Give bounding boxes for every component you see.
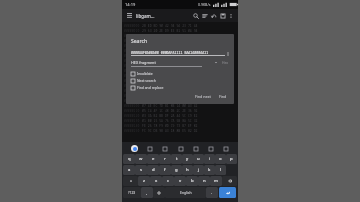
button[interactable]: Shift <box>123 176 138 186</box>
staticText: a <box>128 167 131 173</box>
staticText: 17 14 37 25 90 5F 6F C0 9D 13 <box>142 69 200 73</box>
staticText: m <box>214 178 218 184</box>
staticText: 0E EC C3 A1 EC 9D CD 77 E9 53 <box>142 89 200 93</box>
button[interactable]: j <box>193 165 204 175</box>
button[interactable]: a <box>123 165 135 175</box>
button[interactable]: e <box>147 154 159 164</box>
staticText: 1E B1 0E 49 CB 70 28 36 E3 23 <box>142 54 200 58</box>
staticText: FE 26 78 F9 0D C9 73 B7 EF 82 <box>142 124 200 128</box>
button[interactable]: z <box>138 176 150 186</box>
staticText: English <box>180 190 192 195</box>
staticText: 00000040 <box>124 44 140 48</box>
button[interactable]: v <box>174 176 186 186</box>
staticText: Next search <box>137 78 156 83</box>
button[interactable]: m <box>210 176 222 186</box>
button[interactable]: Voice input <box>222 145 229 152</box>
staticText: c <box>167 178 170 184</box>
button[interactable]: Backspace <box>222 176 237 186</box>
staticText: b <box>191 178 194 184</box>
button[interactable]: Clipboard <box>192 145 199 152</box>
button[interactable]: Go to offset <box>200 11 209 20</box>
button[interactable]: Themes <box>146 145 153 152</box>
button[interactable]: c <box>162 176 174 186</box>
staticText: Find <box>219 94 227 99</box>
staticText: 01 B0 15 5A 76 7A 5B 8A 5C 32 <box>142 119 200 123</box>
staticText: x <box>155 178 158 184</box>
staticText: 00000050 <box>124 49 140 53</box>
staticText: 00000120 <box>124 114 140 118</box>
button[interactable]: x <box>150 176 162 186</box>
staticText: 0C 62 26 40 83 EC E5 A5 7D A2 <box>142 94 200 98</box>
button[interactable]: n <box>198 176 210 186</box>
button[interactable]: u <box>193 154 204 164</box>
staticText: 00000030 <box>124 39 140 43</box>
button[interactable]: l <box>215 165 226 175</box>
button[interactable]: Stickers <box>177 145 184 152</box>
button[interactable]: Save <box>218 11 227 20</box>
button[interactable]: d <box>147 165 159 175</box>
staticText: 000000B0 <box>124 79 140 83</box>
staticText: k <box>208 167 211 173</box>
button[interactable]: . <box>206 187 218 198</box>
button[interactable]: HEX fragment <box>131 60 229 65</box>
staticText: 00000010 <box>124 29 140 33</box>
staticText: f <box>164 167 166 173</box>
staticText: 000000D0 <box>124 89 140 93</box>
staticText: j <box>198 167 200 173</box>
staticText: s <box>140 167 143 173</box>
button[interactable]: s <box>135 165 147 175</box>
staticText: 00000130 <box>124 119 140 123</box>
staticText: 00000110 <box>124 109 140 113</box>
button[interactable]: Emoji <box>153 187 165 198</box>
button[interactable]: , <box>141 187 153 198</box>
button[interactable]: Google <box>131 145 138 152</box>
button[interactable]: q <box>123 154 135 164</box>
button[interactable]: Settings <box>207 145 214 152</box>
staticText: e <box>152 156 155 162</box>
staticText: 20 3B AB AA 34 21 10 08 50 D3 <box>142 49 200 53</box>
button[interactable]: Find next <box>193 93 213 100</box>
staticText: p <box>230 156 233 162</box>
staticText: u <box>197 156 200 162</box>
button[interactable]: r <box>159 154 171 164</box>
button[interactable]: i <box>204 154 215 164</box>
staticText: 00000080 <box>124 64 140 68</box>
staticText: 0000AAF0A00A00 0000AFA1111 BAA1A000AA11 <box>131 50 209 54</box>
button[interactable]: t <box>171 154 182 164</box>
button[interactable]: More options <box>227 12 235 20</box>
button[interactable]: y <box>182 154 193 164</box>
button[interactable]: g <box>171 165 182 175</box>
button[interactable]: h <box>182 165 193 175</box>
staticText: 00000060 <box>124 54 140 58</box>
button[interactable]: w <box>135 154 147 164</box>
button[interactable]: p <box>226 154 237 164</box>
staticText: h <box>186 167 189 173</box>
button[interactable]: k <box>204 165 215 175</box>
button[interactable]: Navigation drawer <box>125 11 134 20</box>
button[interactable]: b <box>186 176 198 186</box>
staticText: 15 8A 9A C4 27 AE 86 ED 30 63 <box>142 74 200 78</box>
button[interactable]: GIF <box>161 145 168 152</box>
staticText: v <box>179 178 182 184</box>
staticText: 05 C4 4F 1C 48 DB 2C 2E 36 92 <box>142 109 200 113</box>
button[interactable]: Search <box>191 11 200 20</box>
button[interactable]: ?123 <box>123 187 141 198</box>
staticText: 000000E0 <box>124 94 140 98</box>
staticText: 19 9E D4 87 F9 0F 57 92 0A C3 <box>142 64 200 68</box>
staticText: 2B ED BD 90 42 94 9A 23 71 44 <box>142 24 200 28</box>
button[interactable]: Enter <box>219 187 236 198</box>
staticText: 00000150 <box>124 129 140 133</box>
button[interactable]: Find and replace <box>131 84 229 91</box>
button[interactable]: Find <box>217 93 229 100</box>
button[interactable]: Invalidate <box>131 70 229 77</box>
button[interactable]: f <box>159 165 171 175</box>
staticText: 00000070 <box>124 59 140 63</box>
staticText: 00000140 <box>124 124 140 128</box>
button[interactable]: Undo <box>209 11 218 20</box>
staticText: 10 76 60 02 55 4D B6 49 56 03 <box>142 84 200 88</box>
staticText: z <box>143 178 145 184</box>
button[interactable]: o <box>215 154 226 164</box>
button[interactable]: Next search <box>131 77 229 84</box>
button[interactable]: English <box>165 187 206 198</box>
